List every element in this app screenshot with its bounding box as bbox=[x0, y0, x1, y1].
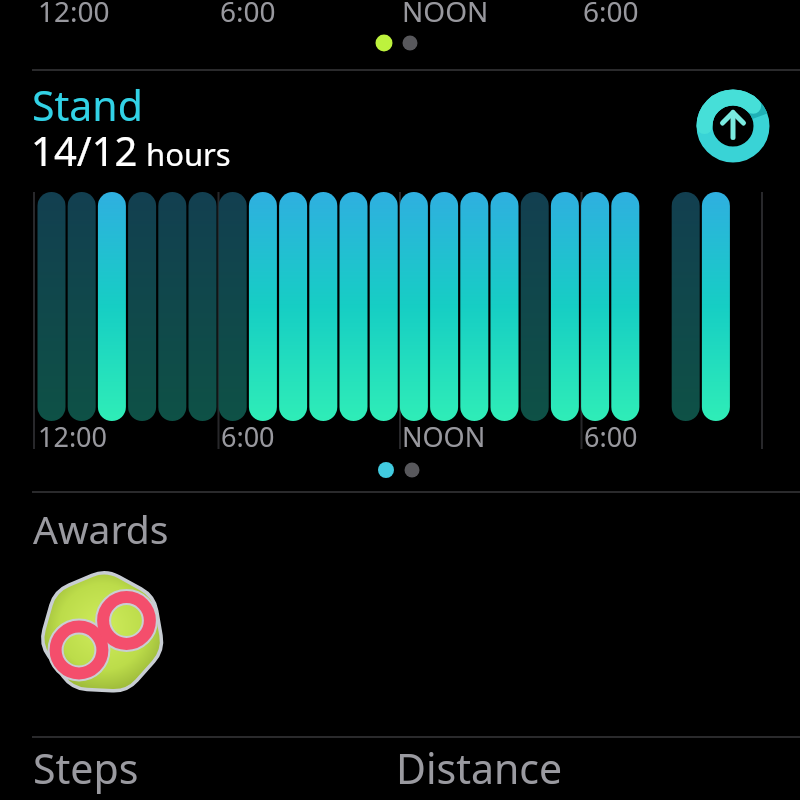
staticText: 14/12 bbox=[31, 123, 138, 177]
staticText: 6:00 bbox=[583, 0, 639, 30]
button[interactable]: Awards bbox=[33, 502, 169, 555]
staticText: 6:00 bbox=[221, 418, 275, 455]
staticText: NOON bbox=[402, 418, 486, 455]
staticText: NOON bbox=[402, 0, 489, 30]
staticText: 12:00 bbox=[38, 0, 110, 30]
button[interactable] bbox=[695, 88, 771, 164]
staticText: hours bbox=[146, 133, 231, 175]
button[interactable]: Distance bbox=[396, 740, 563, 796]
button[interactable] bbox=[38, 570, 168, 700]
staticText: 12:00 bbox=[38, 418, 108, 455]
staticText: 6:00 bbox=[584, 418, 638, 455]
staticText: 6:00 bbox=[220, 0, 276, 30]
button[interactable]: Steps bbox=[33, 740, 139, 796]
staticText: Stand bbox=[32, 77, 143, 133]
